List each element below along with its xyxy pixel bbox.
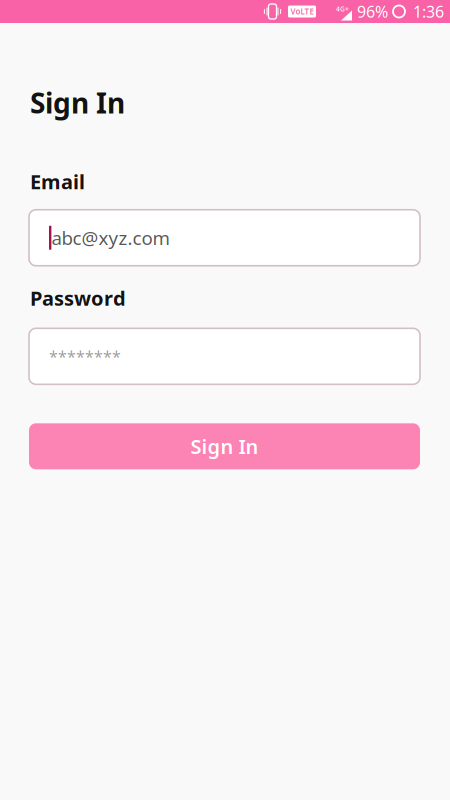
staticText: 96% bbox=[357, 1, 388, 22]
staticText: 4G+ bbox=[336, 4, 349, 13]
button[interactable]: Sign In bbox=[29, 423, 420, 469]
staticText: Password bbox=[30, 285, 126, 311]
staticText: ******** bbox=[49, 346, 121, 367]
staticText: 1:36 bbox=[413, 1, 444, 22]
button[interactable]: Password text field bbox=[29, 328, 420, 384]
staticText: VoLTE bbox=[290, 6, 313, 17]
button[interactable]: Email address text field bbox=[29, 210, 420, 266]
staticText: Email bbox=[30, 168, 85, 195]
staticText: Sign In bbox=[190, 433, 258, 460]
staticText: Sign In bbox=[30, 84, 125, 121]
staticText: abc@xyz.com bbox=[51, 225, 169, 250]
